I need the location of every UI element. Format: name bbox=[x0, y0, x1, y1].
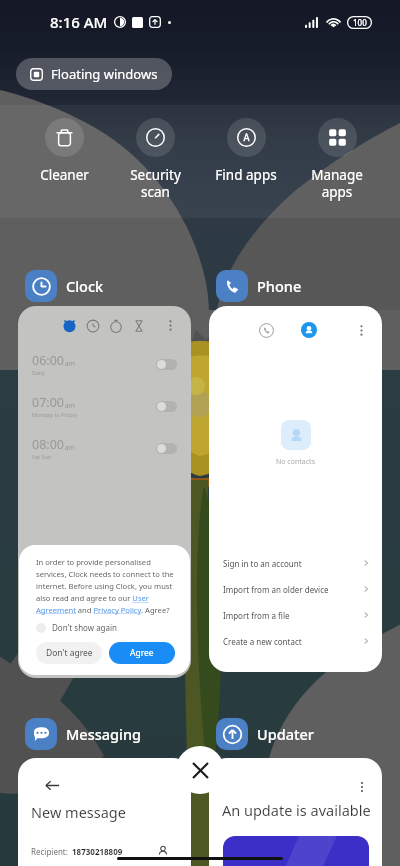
staticText: Import from a file bbox=[223, 610, 290, 621]
staticText: An update is available bbox=[222, 800, 371, 820]
button[interactable]: Sign in to an account bbox=[209, 550, 382, 576]
button[interactable]: Import from an older device bbox=[209, 576, 382, 602]
staticText: 8:16 AM bbox=[50, 12, 108, 32]
staticText: Recipient: bbox=[31, 846, 68, 857]
button[interactable]: Floating windows bbox=[16, 58, 172, 90]
button[interactable]: Manage apps bbox=[297, 118, 377, 201]
staticText: Sat Sun bbox=[32, 453, 52, 460]
staticText: Phone bbox=[257, 276, 302, 296]
staticText: Updater bbox=[257, 724, 314, 744]
button[interactable]: Agree bbox=[109, 642, 175, 664]
button[interactable]: 06:00 bbox=[18, 306, 191, 678]
staticText: New message bbox=[31, 802, 126, 822]
button[interactable] bbox=[156, 359, 177, 370]
button[interactable]: Create a new contact bbox=[209, 628, 382, 654]
staticText: 08:00 bbox=[32, 436, 64, 453]
button[interactable]: Don't agree bbox=[36, 642, 102, 664]
staticText: Don't show again bbox=[52, 622, 118, 633]
button[interactable] bbox=[156, 443, 177, 454]
staticText: am bbox=[65, 443, 75, 452]
button[interactable]: An update is available bbox=[209, 758, 382, 866]
button[interactable] bbox=[156, 401, 177, 412]
staticText: am bbox=[65, 359, 75, 368]
staticText: Create a new contact bbox=[223, 636, 302, 647]
button[interactable]: Don't show again bbox=[36, 622, 118, 633]
staticText: In order to provide personalised service… bbox=[36, 557, 175, 615]
staticText: Cleaner bbox=[40, 166, 89, 184]
button[interactable]: Find apps bbox=[206, 118, 286, 184]
staticText: 100 bbox=[353, 17, 367, 28]
staticText: Don't agree bbox=[46, 647, 93, 659]
staticText: Agree bbox=[130, 647, 154, 659]
staticText: Manage apps bbox=[311, 166, 363, 201]
staticText: Daily bbox=[32, 369, 45, 376]
staticText: 07:00 bbox=[32, 394, 64, 411]
staticText: Clock bbox=[66, 276, 104, 296]
staticText: Sign in to an account bbox=[223, 558, 302, 569]
staticText: Import from an older device bbox=[223, 584, 329, 595]
staticText: No contacts bbox=[276, 457, 315, 467]
staticText: 06:00 bbox=[32, 352, 64, 369]
button[interactable]: Import from a file bbox=[209, 602, 382, 628]
staticText: Messaging bbox=[66, 724, 142, 744]
staticText: Security scan bbox=[130, 166, 181, 201]
staticText: Floating windows bbox=[51, 65, 158, 83]
button[interactable]: No contacts bbox=[209, 306, 382, 672]
staticText: Monday to Friday bbox=[32, 411, 77, 418]
button[interactable]: New message bbox=[18, 758, 191, 866]
staticText: 18730218809 bbox=[72, 846, 123, 857]
staticText: am bbox=[65, 401, 75, 410]
button[interactable]: Close all bbox=[176, 746, 224, 794]
staticText: Find apps bbox=[215, 166, 277, 184]
button[interactable]: Security scan bbox=[115, 118, 195, 201]
button[interactable]: Cleaner bbox=[24, 118, 104, 184]
